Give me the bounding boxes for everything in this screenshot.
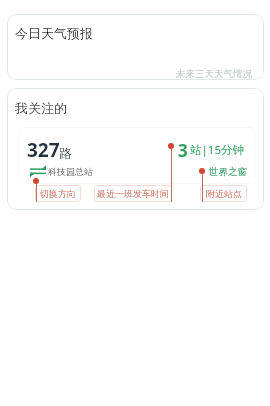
button[interactable]: [7, 14, 264, 80]
staticText: 站|15分钟: [190, 142, 244, 158]
staticText: 今日天气预报: [15, 25, 93, 41]
staticText: 附近站点: [206, 188, 242, 199]
button[interactable]: 附近站点: [200, 185, 247, 202]
staticText: 3: [178, 139, 188, 159]
button[interactable]: 切换方向: [35, 185, 81, 202]
staticText: 最近一班发车时间: [97, 188, 169, 199]
staticText: 科技园总站: [48, 166, 93, 177]
staticText: 路: [59, 145, 72, 161]
button[interactable]: [18, 127, 256, 184]
button[interactable]: 327: [27, 137, 73, 161]
staticText: 327: [27, 137, 60, 161]
staticText: 世界之窗: [209, 166, 247, 178]
staticText: 未来三天天气情况: [176, 68, 252, 80]
button[interactable]: 最近一班发车时间: [94, 185, 172, 202]
staticText: 切换方向: [40, 188, 76, 199]
button[interactable]: 3: [178, 139, 248, 159]
staticText: 我关注的: [15, 100, 67, 116]
